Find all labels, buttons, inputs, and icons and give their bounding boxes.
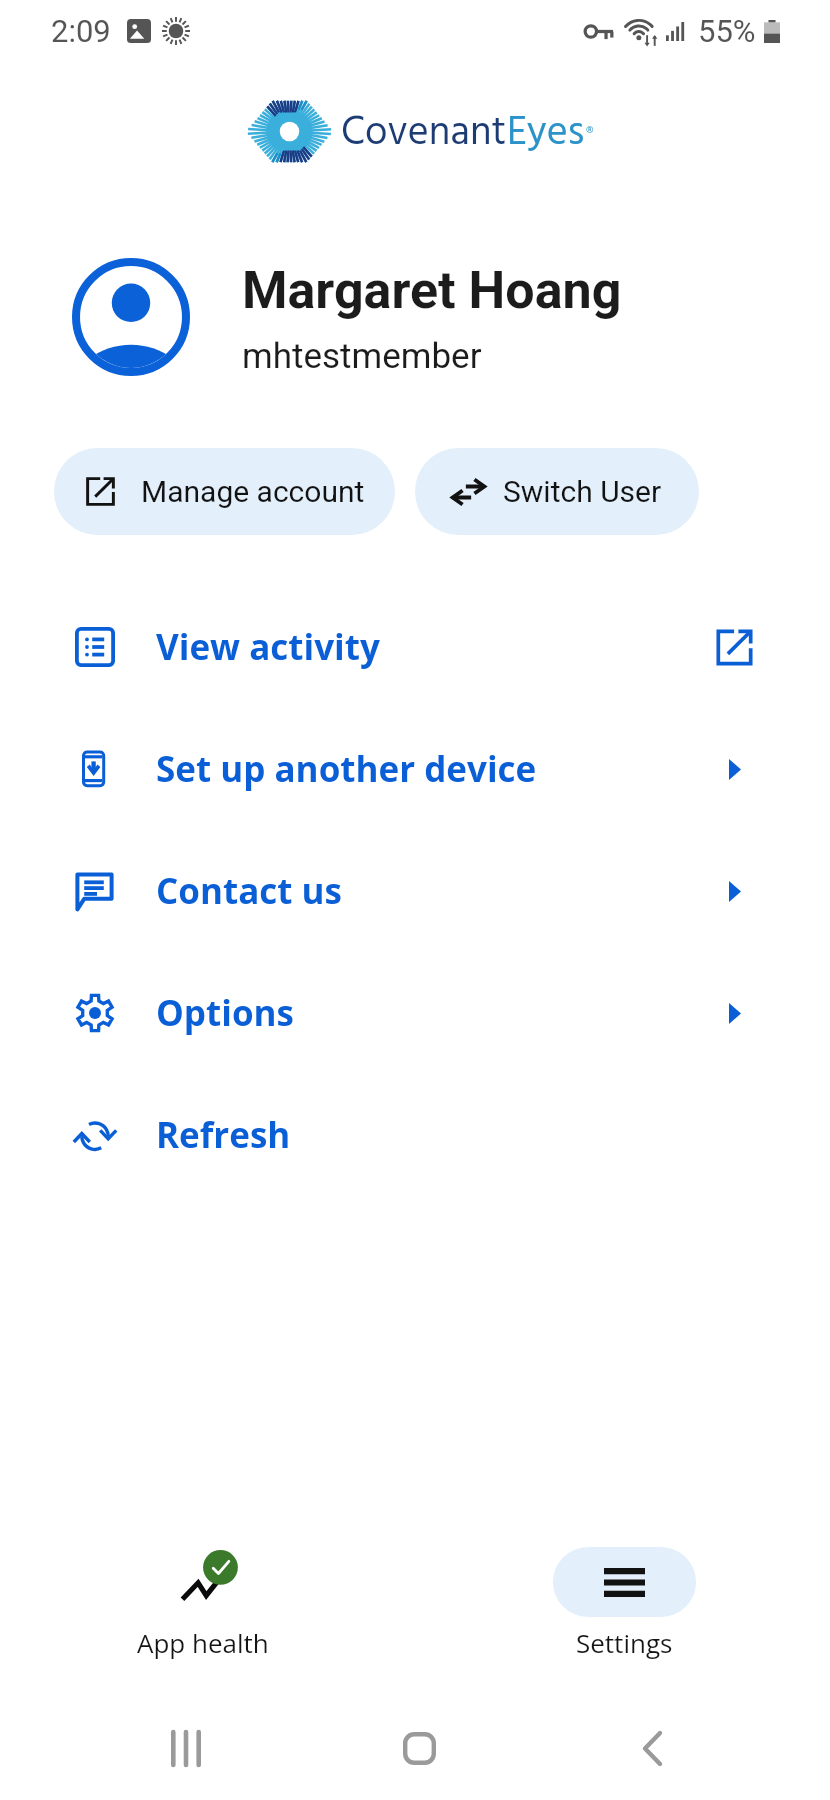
- staticText: Contact us: [156, 867, 342, 915]
- button[interactable]: Switch User: [415, 448, 699, 535]
- button[interactable]: Set up another device: [0, 708, 830, 830]
- staticText: App health: [137, 1625, 269, 1660]
- button[interactable]: Refresh: [0, 1074, 830, 1196]
- button[interactable]: View activity: [0, 586, 830, 708]
- staticText: mhtestmember: [242, 336, 482, 377]
- button[interactable]: App health: [98, 1547, 308, 1660]
- staticText: Switch User: [503, 474, 662, 509]
- staticText: Margaret Hoang: [242, 260, 622, 321]
- button[interactable]: Options: [0, 952, 830, 1074]
- staticText: Options: [156, 989, 294, 1037]
- staticText: ®: [586, 123, 594, 135]
- staticText: Manage account: [141, 474, 365, 509]
- button[interactable]: Recent apps: [116, 1694, 256, 1800]
- staticText: Settings: [576, 1625, 673, 1660]
- staticText: Eyes: [507, 102, 585, 166]
- staticText: View activity: [156, 623, 380, 671]
- button[interactable]: Contact us: [0, 830, 830, 952]
- button[interactable]: Home: [349, 1694, 489, 1800]
- staticText: Set up another device: [156, 745, 537, 793]
- staticText: 55%: [698, 13, 756, 49]
- staticText: Refresh: [156, 1111, 291, 1159]
- button[interactable]: Back: [582, 1694, 722, 1800]
- button[interactable]: Manage account: [54, 448, 395, 535]
- staticText: 2:09: [51, 13, 111, 49]
- button[interactable]: Settings: [519, 1547, 729, 1660]
- staticText: Covenant: [341, 102, 507, 166]
